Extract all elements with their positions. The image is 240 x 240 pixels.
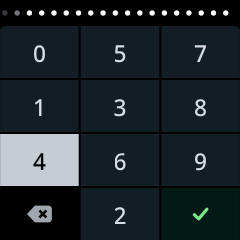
button[interactable]: 7: [161, 26, 240, 78]
button[interactable]: 5: [81, 26, 159, 78]
staticText: 4: [33, 146, 46, 176]
button[interactable]: 8: [161, 80, 240, 132]
staticText: 6: [113, 146, 126, 176]
button[interactable]: Confirm: [161, 188, 240, 240]
button[interactable]: 4: [0, 134, 79, 186]
button[interactable]: 3: [81, 80, 159, 132]
button[interactable]: 2: [81, 188, 159, 240]
staticText: 5: [113, 38, 126, 68]
staticText: 8: [194, 92, 207, 122]
button[interactable]: 0: [0, 26, 79, 78]
button[interactable]: Delete: [0, 188, 79, 240]
staticText: 0: [33, 38, 46, 68]
staticText: 9: [194, 146, 207, 176]
button[interactable]: 6: [81, 134, 159, 186]
staticText: 1: [33, 92, 46, 122]
button[interactable]: 9: [161, 134, 240, 186]
staticText: 2: [113, 200, 126, 230]
button[interactable]: 1: [0, 80, 79, 132]
staticText: 7: [194, 38, 207, 68]
staticText: 3: [113, 92, 126, 122]
